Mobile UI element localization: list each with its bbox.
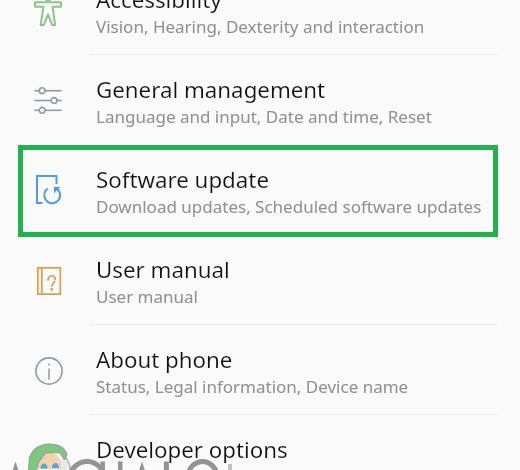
staticText: User manual	[96, 285, 198, 308]
staticText: Accessibility	[96, 0, 222, 14]
staticText: General management	[96, 74, 326, 104]
staticText: Vision, Hearing, Dexterity and interacti…	[96, 15, 425, 38]
staticText: About phone	[96, 344, 233, 374]
other: Software update	[36, 175, 60, 204]
button[interactable]: User manual	[0, 234, 520, 324]
staticText: Language and input, Date and time, Reset	[96, 105, 432, 128]
staticText: Status, Legal information, Device name	[96, 375, 409, 398]
button[interactable]: Accessibility	[0, 0, 520, 54]
button[interactable]: Developer options	[0, 414, 520, 470]
button[interactable]: Software update	[0, 144, 520, 234]
button[interactable]: General management	[0, 54, 520, 144]
staticText: Download updates, Scheduled software upd…	[96, 195, 482, 218]
other: General management	[34, 87, 62, 114]
other: About phone	[35, 357, 63, 385]
staticText: User manual	[96, 254, 230, 284]
other: Accessibility	[34, 0, 62, 26]
button[interactable]: About phone	[0, 324, 520, 414]
staticText: Developer options	[96, 434, 288, 464]
staticText: Software update	[96, 164, 269, 194]
other: User manual	[37, 267, 62, 295]
